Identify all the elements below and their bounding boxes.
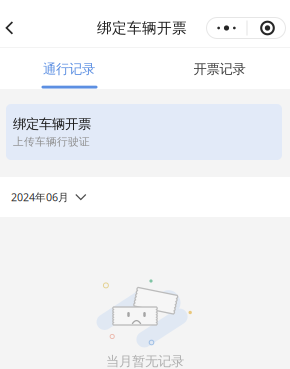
staticText: 当月暂无记录: [106, 353, 184, 369]
staticText: 开票记录: [193, 61, 245, 77]
button[interactable]: 绑定车辆开票: [6, 104, 282, 160]
staticText: 通行记录: [43, 61, 95, 77]
staticText: 绑定车辆开票: [97, 19, 187, 37]
staticText: 2024年06月: [11, 190, 69, 204]
staticText: 上传车辆行驶证: [13, 135, 90, 148]
button[interactable]: 通行记录: [0, 47, 145, 89]
button[interactable]: 返回: [0, 10, 19, 46]
staticText: 绑定车辆开票: [13, 116, 91, 132]
button[interactable]: 更多与关闭: [204, 10, 288, 46]
button[interactable]: 开票记录: [145, 47, 290, 89]
button[interactable]: 2024年06月: [0, 177, 290, 217]
